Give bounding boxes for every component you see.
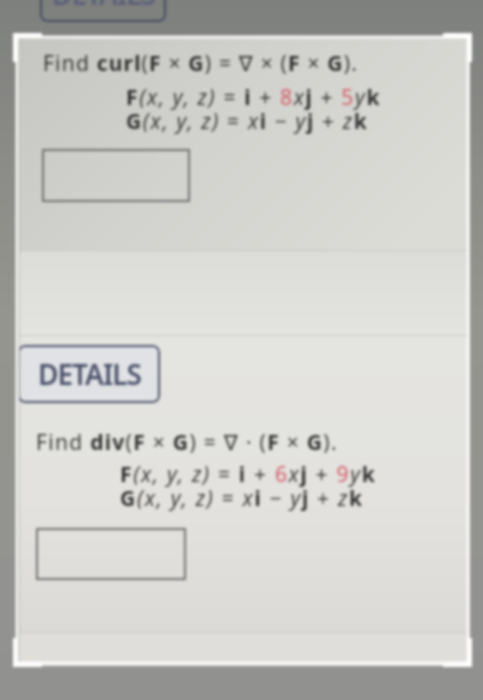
button[interactable]: DETAILS [40,0,166,22]
staticText: Find curl(F × G) = ∇ × (F × G). [43,49,359,78]
staticText: DETAILS [38,355,141,393]
button[interactable]: Answer input field [42,149,190,202]
button[interactable]: DETAILS [18,345,160,403]
staticText: DETAILS [52,0,155,13]
staticText: Find div(F × G) = ∇ · (F × G). [36,428,338,457]
staticText: G(x, y, z) = xi − yj + zk [120,484,364,513]
staticText: G(x, y, z) = xi − yj + zk [126,107,369,136]
staticText: F(x, y, z) = i + 8xj + 5yk [126,83,382,112]
button[interactable]: Answer input field [36,528,186,580]
staticText: F(x, y, z) = i + 6xj + 9yk [120,460,377,489]
